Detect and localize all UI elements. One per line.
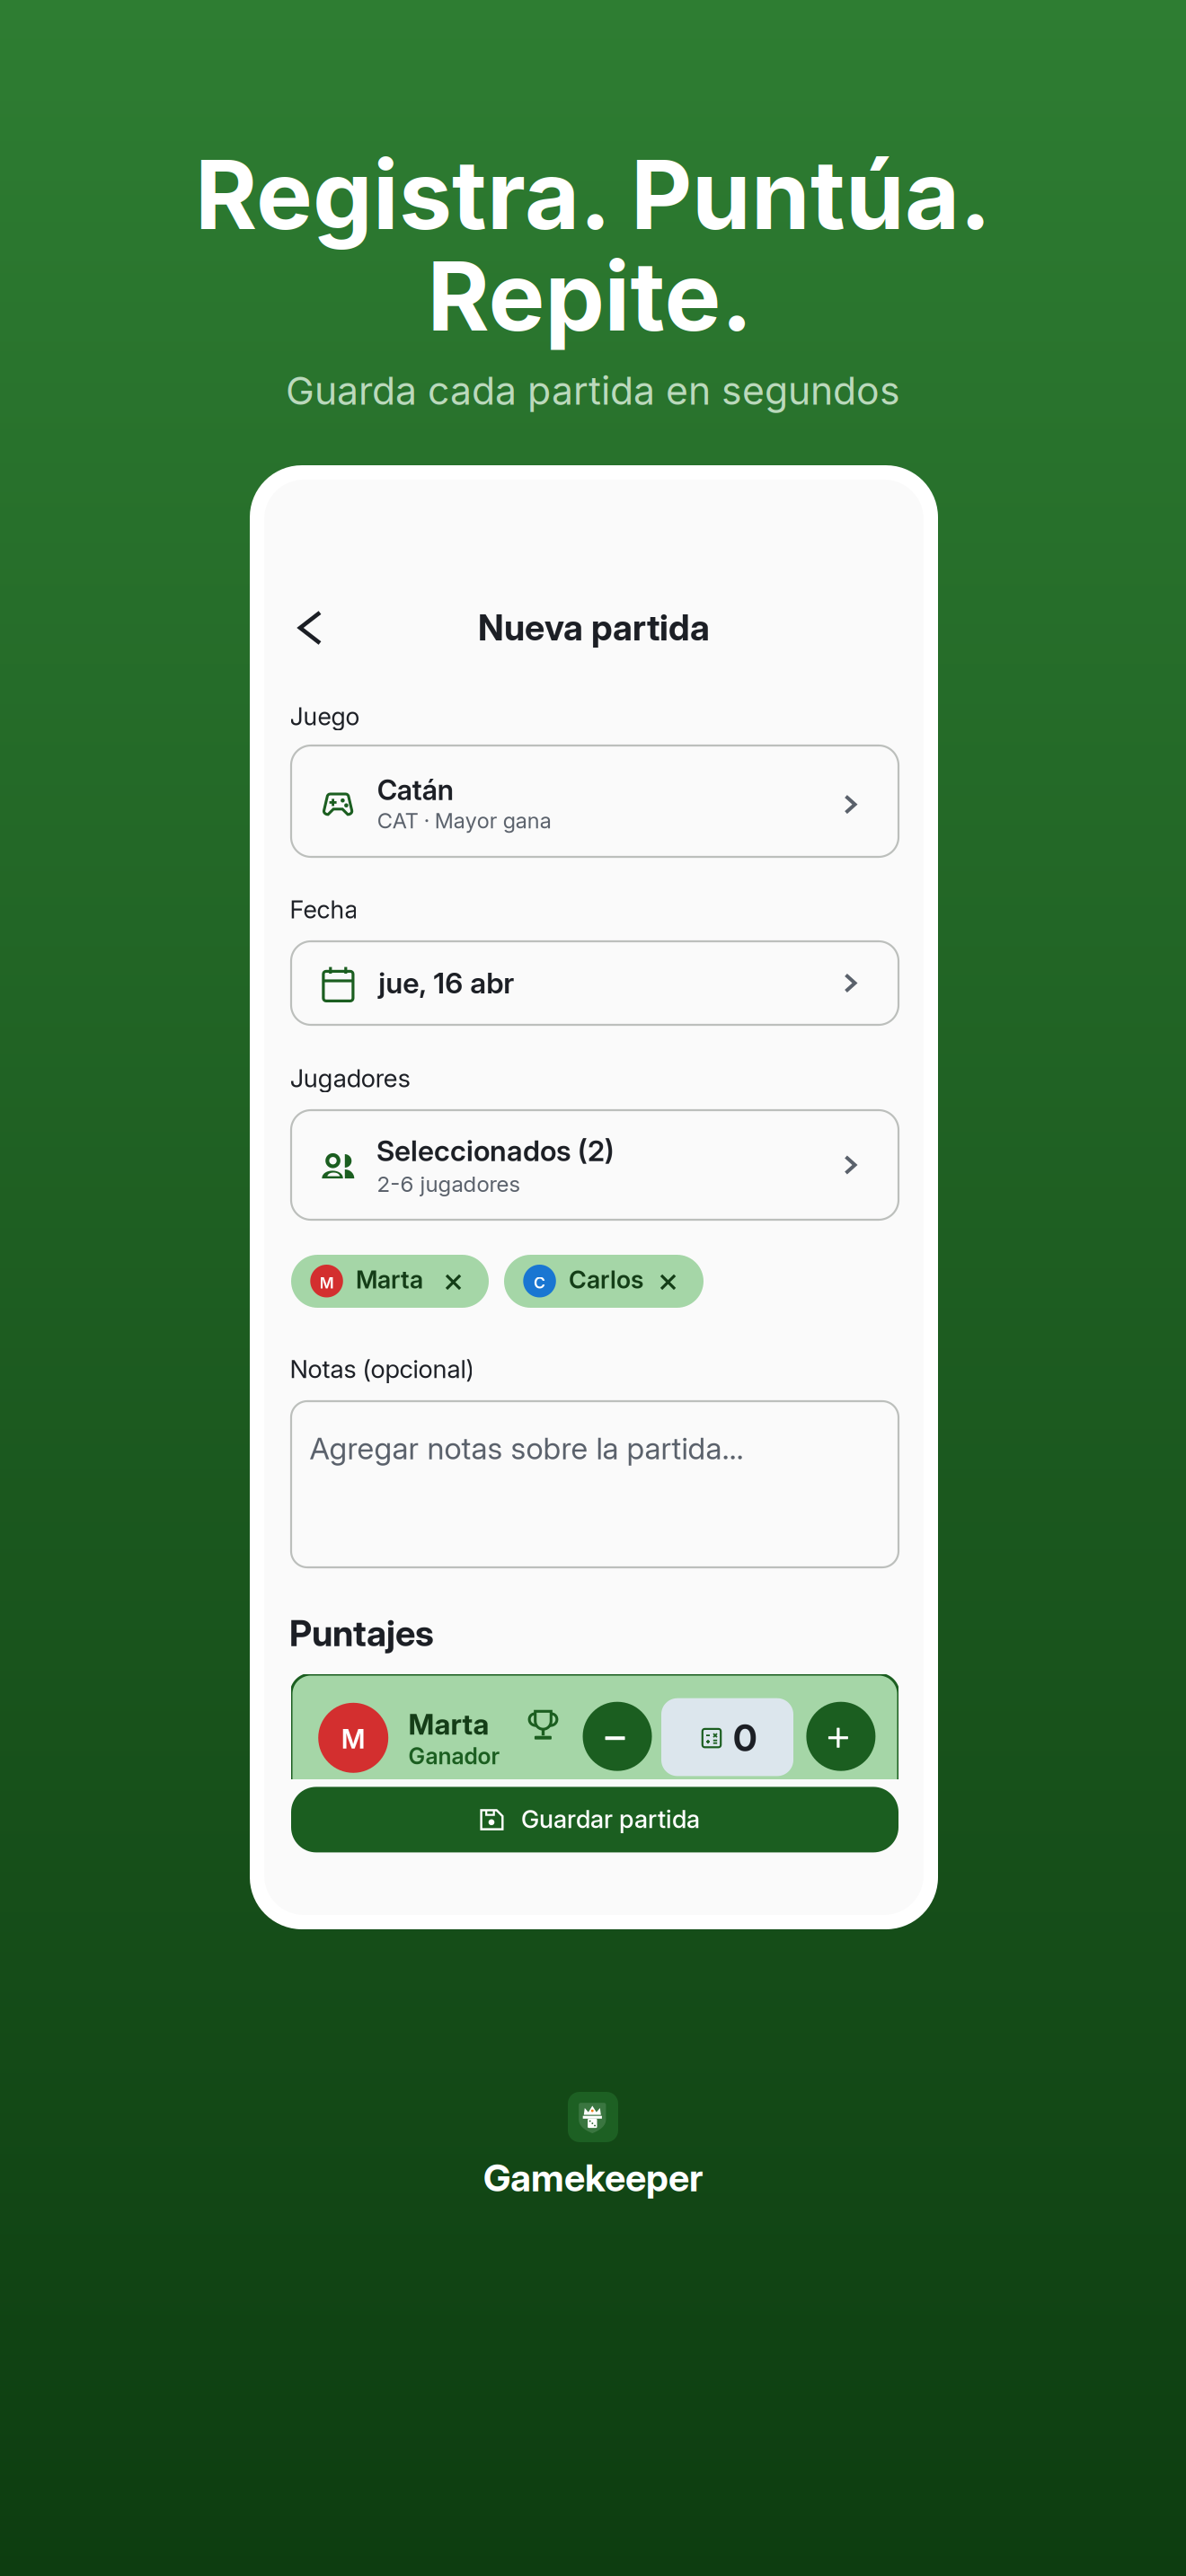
staticText: C <box>534 1273 545 1292</box>
staticText: Seleccionados (2) <box>376 1134 615 1168</box>
staticText: jue, 16 abr <box>379 965 514 1000</box>
staticText: Agregar notas sobre la partida... <box>309 1430 743 1467</box>
staticText: Marta <box>408 1707 489 1741</box>
staticText: Notas (opcional) <box>290 1354 474 1384</box>
staticText: 2-6 jugadores <box>377 1171 521 1197</box>
button[interactable]: Increase score <box>806 1702 875 1771</box>
staticText: Puntajes <box>289 1612 434 1655</box>
button[interactable]: C <box>504 1255 704 1308</box>
staticText: Nueva partida <box>478 606 710 649</box>
staticText: Carlos <box>569 1265 643 1294</box>
staticText: 0 <box>733 1716 757 1760</box>
staticText: M <box>320 1273 334 1292</box>
button[interactable]: Seleccionados (2) <box>291 1110 898 1220</box>
button[interactable]: M <box>291 1255 489 1308</box>
button[interactable]: Guardar partida <box>291 1787 898 1852</box>
staticText: Jugadores <box>290 1063 410 1093</box>
staticText: M <box>341 1723 365 1755</box>
staticText: Juego <box>290 702 360 731</box>
staticText: CAT · Mayor gana <box>377 808 551 833</box>
staticText: Repite. <box>427 239 752 353</box>
staticText: Gamekeeper <box>483 2155 703 2200</box>
staticText: Catán <box>377 773 454 807</box>
staticText: Ganador <box>408 1743 500 1770</box>
staticText: Fecha <box>290 895 358 924</box>
staticText: Registra. Puntúa. <box>195 137 991 252</box>
staticText: Guarda cada partida en segundos <box>286 368 900 414</box>
button[interactable]: Decrease score <box>582 1702 653 1771</box>
staticText: Marta <box>356 1265 423 1294</box>
button[interactable]: jue, 16 abr <box>291 941 898 1025</box>
staticText: Guardar partida <box>521 1804 700 1834</box>
button[interactable]: Back <box>293 607 334 648</box>
button[interactable]: Catán <box>291 745 898 857</box>
